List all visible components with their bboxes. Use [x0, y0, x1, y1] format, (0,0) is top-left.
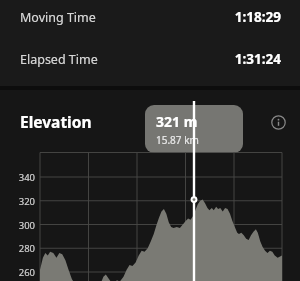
button[interactable]: Elapsed Time [0, 30, 300, 72]
staticText: 1:31:24 [234, 50, 281, 68]
staticText: 320 [11, 195, 35, 208]
staticText: Elevation [20, 111, 92, 132]
staticText: 300 [11, 219, 35, 232]
staticText: 280 [11, 242, 35, 255]
staticText: 340 [11, 171, 35, 184]
button[interactable]: Moving Time [0, 0, 300, 30]
staticText: 15.87 km [156, 133, 199, 147]
staticText: 1:18:29 [234, 8, 281, 26]
button[interactable]: Info [268, 112, 288, 132]
button[interactable]: 321 m [145, 105, 243, 153]
staticText: Elapsed Time [20, 51, 98, 68]
staticText: 260 [11, 266, 35, 279]
staticText: 321 m [156, 112, 198, 131]
staticText: Moving Time [20, 9, 96, 26]
